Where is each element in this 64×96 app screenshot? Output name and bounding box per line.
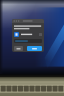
button[interactable]: [27, 46, 42, 51]
button[interactable]: [14, 39, 42, 43]
button[interactable]: App icon: [14, 31, 42, 38]
other: App icon: [14, 32, 19, 37]
button[interactable]: [14, 46, 23, 51]
